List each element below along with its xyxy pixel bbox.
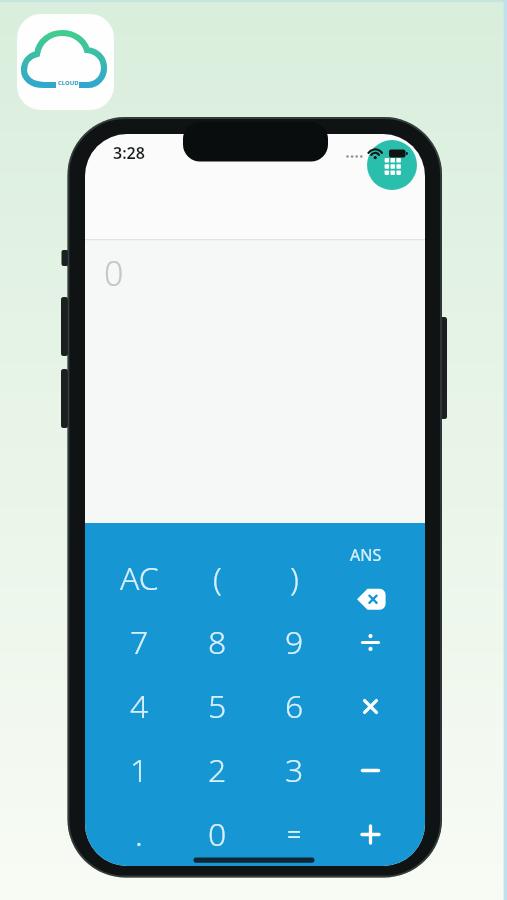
staticText: 2 [208,748,227,792]
button[interactable]: AC [100,546,178,610]
staticText: 5 [208,684,227,728]
button[interactable]: . [100,802,178,866]
staticText: 1 [130,748,149,792]
button[interactable] [331,610,409,674]
button[interactable]: 5 [178,674,256,738]
button[interactable]: ANS [327,542,405,567]
staticText: ( [213,556,222,600]
button[interactable]: 6 [255,674,333,738]
staticText: . [135,812,143,856]
staticText: 7 [130,620,149,664]
button[interactable]: 7 [100,610,178,674]
staticText: ANS [350,544,382,566]
staticText: ) [290,556,299,600]
button[interactable] [331,674,409,738]
staticText: 8 [208,620,227,664]
button[interactable] [331,738,409,802]
button[interactable]: 4 [100,674,178,738]
staticText: 4 [130,684,149,728]
staticText: 6 [285,684,304,728]
staticText: 9 [285,620,304,664]
button[interactable]: 9 [255,610,333,674]
button[interactable]: = [255,802,333,866]
staticText: 3:28 [113,142,145,164]
staticText: 0 [104,250,124,294]
button[interactable]: 2 [178,738,256,802]
button[interactable]: 3 [255,738,333,802]
staticText: 3 [285,748,304,792]
staticText: AC [120,556,159,600]
button[interactable]: ) [255,546,333,610]
staticText: = [287,817,302,851]
staticText: CLOUD [58,79,79,87]
button[interactable]: 8 [178,610,256,674]
button[interactable]: 1 [100,738,178,802]
button[interactable]: ( [178,546,256,610]
button[interactable] [332,586,410,612]
button[interactable] [367,140,417,190]
staticText: 0 [208,812,227,856]
button[interactable] [331,802,409,866]
button[interactable]: 0 [178,802,256,866]
